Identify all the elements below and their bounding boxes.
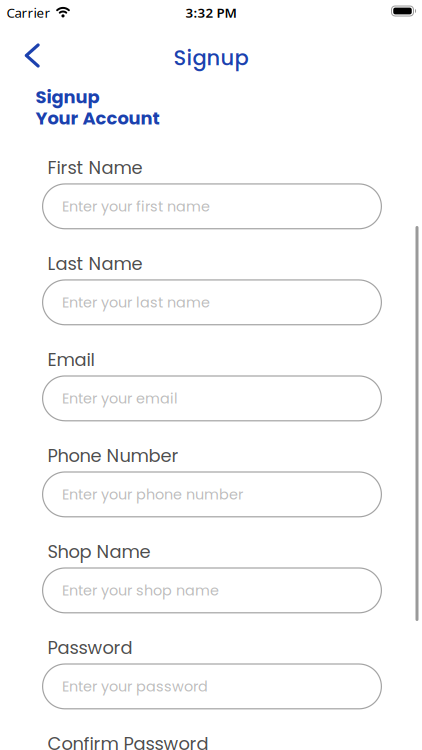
button[interactable]: Enter your phone number: [42, 471, 382, 517]
button[interactable]: Back: [0, 33, 40, 74]
button[interactable]: Enter your password: [42, 663, 382, 709]
button[interactable]: Enter your email: [42, 375, 382, 421]
staticText: Carrier: [6, 4, 50, 21]
staticText: Enter your first name: [62, 196, 210, 216]
button[interactable]: Enter your last name: [42, 279, 382, 325]
staticText: Enter your password: [62, 676, 208, 696]
staticText: Enter your email: [62, 388, 178, 408]
staticText: 3:32 PM: [185, 4, 236, 21]
staticText: Signup: [35, 84, 99, 109]
button[interactable]: Enter your shop name: [42, 567, 382, 613]
staticText: Enter your last name: [62, 292, 210, 312]
button[interactable]: Enter your first name: [42, 183, 382, 229]
staticText: Your Account: [35, 106, 159, 131]
staticText: Enter your phone number: [62, 484, 243, 504]
staticText: Confirm Password: [47, 731, 208, 750]
staticText: Phone Number: [47, 443, 178, 468]
staticText: First Name: [47, 155, 142, 180]
staticText: Shop Name: [47, 539, 150, 564]
staticText: Signup: [173, 43, 248, 73]
staticText: Password: [47, 635, 132, 660]
staticText: Enter your shop name: [62, 580, 219, 600]
staticText: Email: [47, 347, 94, 372]
staticText: Last Name: [47, 251, 142, 276]
